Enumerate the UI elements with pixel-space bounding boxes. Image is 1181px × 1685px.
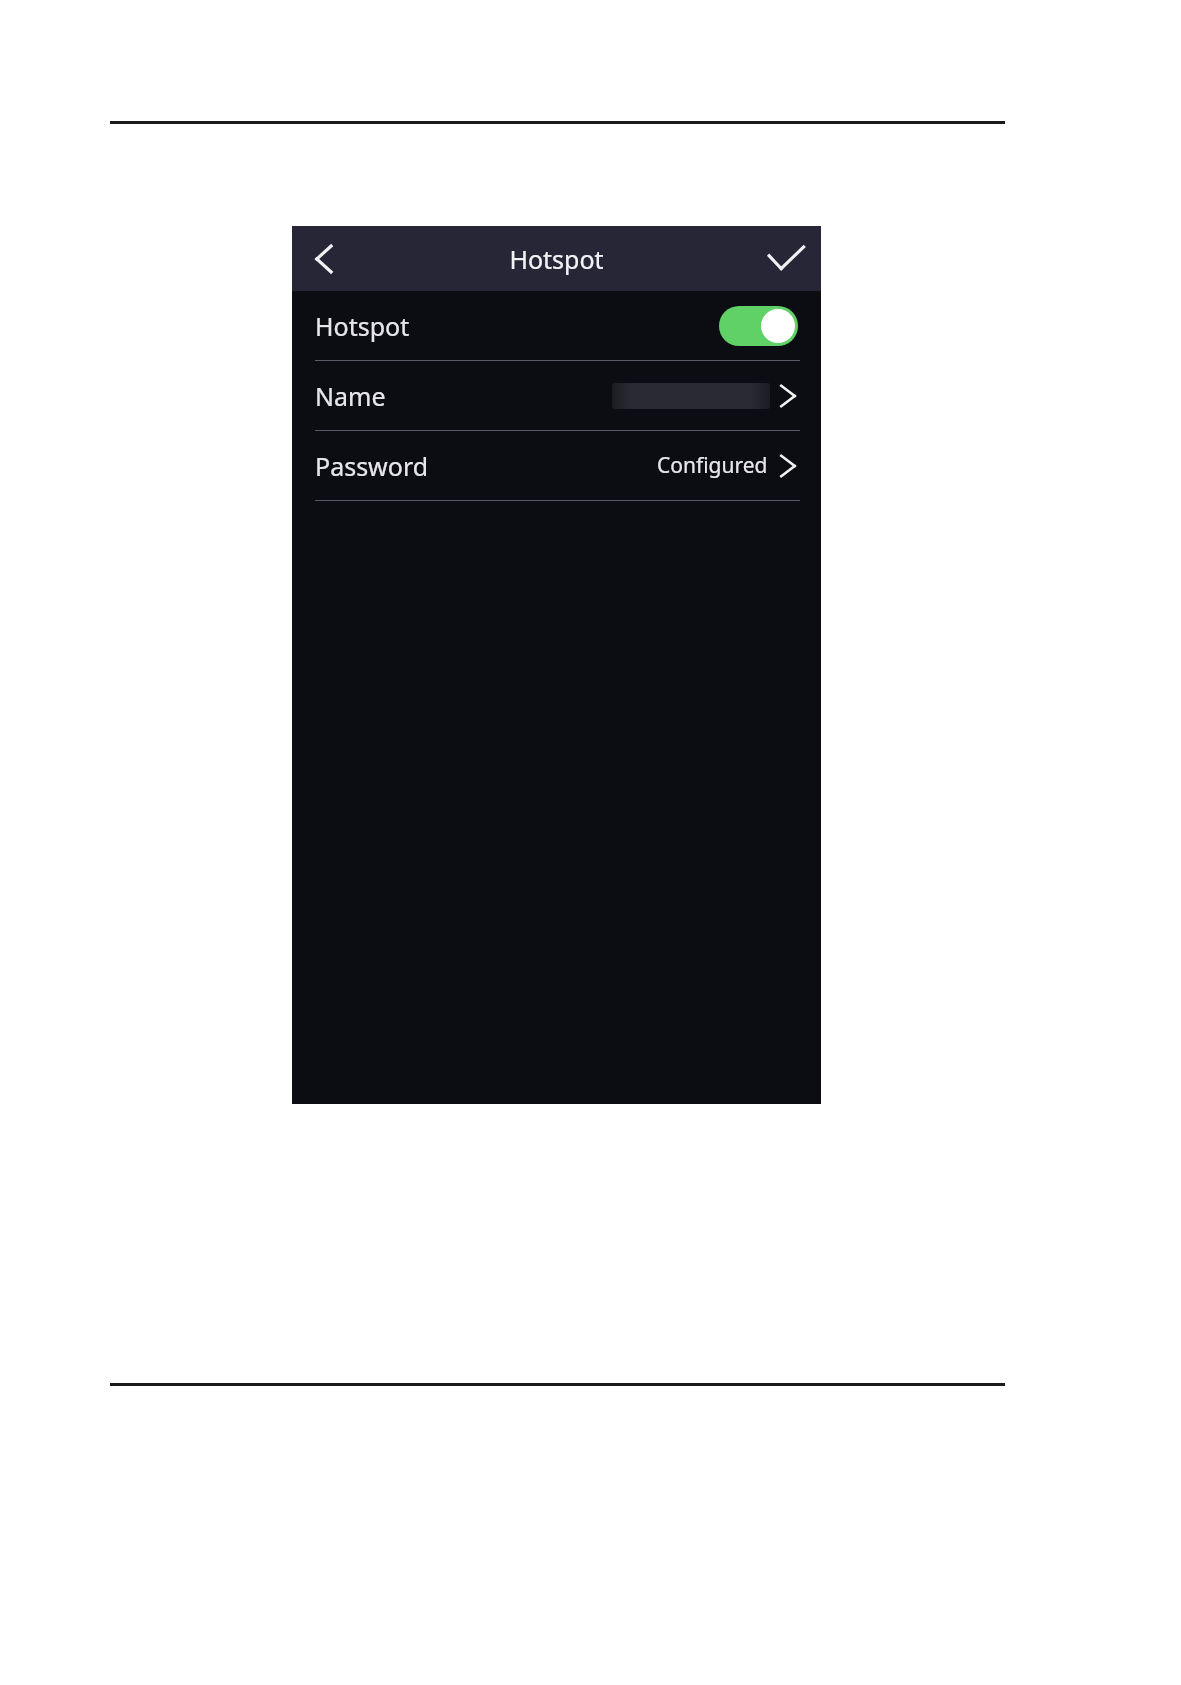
button[interactable]: Hotspot xyxy=(292,291,821,360)
staticText: Name xyxy=(315,379,386,413)
button[interactable]: Hotspot toggle xyxy=(719,306,798,346)
staticText: Configured xyxy=(657,451,768,480)
staticText: Password xyxy=(315,449,429,483)
staticText: Hotspot xyxy=(315,309,410,343)
button[interactable]: Confirm xyxy=(759,232,813,286)
staticText: Hotspot xyxy=(509,242,604,276)
button[interactable]: Name xyxy=(292,361,821,430)
button[interactable]: Back xyxy=(300,232,354,286)
button[interactable]: Password xyxy=(292,431,821,500)
